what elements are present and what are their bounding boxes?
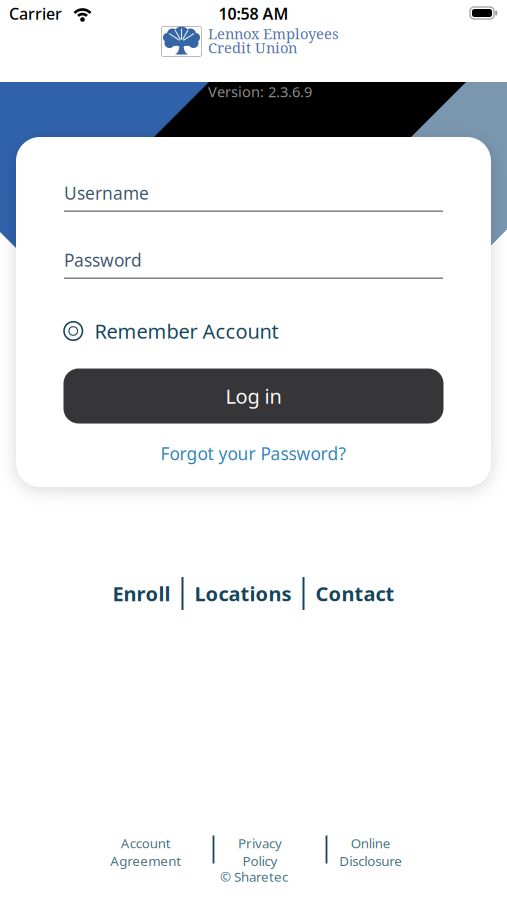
staticText: Agreement bbox=[110, 852, 181, 870]
staticText: Contact bbox=[315, 580, 394, 607]
staticText: Forgot your Password? bbox=[160, 442, 346, 465]
staticText: Disclosure bbox=[339, 852, 402, 870]
staticText: Locations bbox=[194, 580, 291, 607]
staticText: Version: 2.3.6.9 bbox=[208, 82, 312, 101]
button[interactable]: Contact bbox=[315, 580, 394, 607]
staticText: Username bbox=[64, 181, 149, 204]
button[interactable]: Username bbox=[64, 184, 443, 212]
staticText: Remember Account bbox=[94, 318, 278, 344]
button[interactable]: © Sharetec bbox=[220, 868, 288, 885]
staticText: Policy bbox=[242, 852, 277, 870]
staticText: Credit Union bbox=[208, 37, 297, 57]
button[interactable]: Forgot your Password? bbox=[160, 442, 346, 465]
staticText: Password bbox=[64, 248, 142, 271]
button[interactable]: Password bbox=[64, 251, 443, 279]
staticText: Carrier bbox=[9, 3, 62, 24]
button[interactable]: Locations bbox=[194, 580, 291, 607]
staticText: Enroll bbox=[112, 580, 170, 607]
button[interactable]: Online bbox=[339, 834, 402, 870]
staticText: Privacy bbox=[238, 834, 282, 852]
staticText: Lennox Employees bbox=[208, 23, 339, 43]
button[interactable]: Remember Account bbox=[64, 318, 443, 344]
button[interactable]: Enroll bbox=[112, 580, 170, 607]
button[interactable]: Account bbox=[110, 834, 181, 870]
staticText: Log in bbox=[225, 383, 281, 409]
button[interactable]: Privacy bbox=[238, 834, 282, 870]
staticText: © Sharetec bbox=[220, 868, 288, 885]
staticText: Account bbox=[121, 834, 171, 852]
button[interactable]: Log in bbox=[63, 368, 443, 423]
staticText: Online bbox=[351, 834, 391, 852]
staticText: 10:58 AM bbox=[218, 3, 288, 24]
